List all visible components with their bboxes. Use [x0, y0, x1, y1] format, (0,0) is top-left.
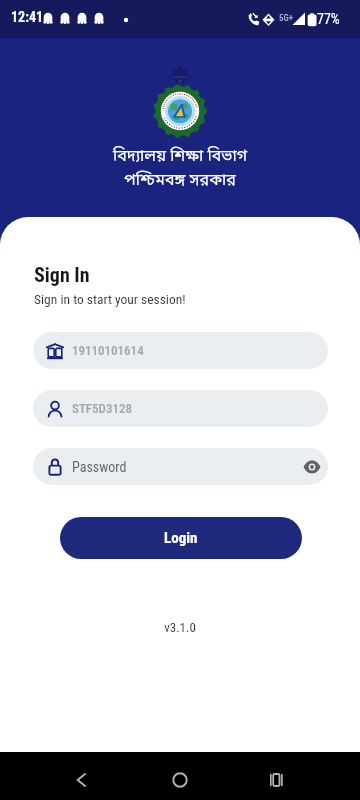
button[interactable] — [298, 453, 326, 481]
button[interactable] — [162, 760, 198, 796]
button[interactable]: Password — [33, 448, 328, 485]
button[interactable] — [259, 760, 295, 796]
staticText: 19110101614 — [72, 343, 144, 358]
staticText: 12:41 — [11, 9, 44, 25]
staticText: v3.1.0 — [0, 620, 360, 635]
staticText: 5G+ — [279, 13, 294, 24]
staticText: 77% — [317, 11, 340, 27]
button[interactable]: Login — [60, 517, 302, 559]
staticText: পশ্চিমবঙ্গ সরকার — [0, 170, 360, 191]
staticText: Password — [72, 459, 127, 475]
staticText: Sign in to start your session! — [34, 291, 186, 307]
staticText: বিদ্যালয় শিক্ষা বিভাগ — [0, 146, 360, 167]
button[interactable]: 19110101614 — [33, 332, 328, 369]
staticText: Login — [164, 529, 198, 547]
button[interactable]: STF5D3128 — [33, 390, 328, 427]
staticText: STF5D3128 — [72, 401, 132, 416]
staticText: Sign In — [34, 263, 90, 286]
button[interactable] — [62, 760, 98, 796]
